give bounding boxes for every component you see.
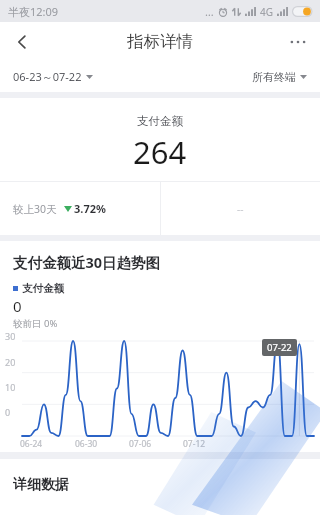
staticText: 10 xyxy=(5,381,16,393)
button[interactable]: 所有终端 xyxy=(250,66,309,88)
staticText: 详细数据 xyxy=(13,476,69,494)
button[interactable]: 较上30天 xyxy=(0,182,160,235)
staticText: 指标详情 xyxy=(127,31,193,52)
button[interactable]: Back xyxy=(0,22,44,61)
staticText: 264 xyxy=(133,131,187,173)
staticText: … xyxy=(205,4,214,19)
staticText: 06-30 xyxy=(75,438,98,450)
staticText: 07-22 xyxy=(267,341,292,354)
staticText: 0 xyxy=(5,406,11,418)
button[interactable]: More options xyxy=(276,22,320,61)
staticText: 支付金额近30日趋势图 xyxy=(13,252,161,272)
staticText: 06-23～07-22 xyxy=(13,69,82,84)
staticText: 所有终端 xyxy=(252,70,296,84)
staticText: 07-06 xyxy=(129,438,152,450)
staticText: 20 xyxy=(5,356,16,368)
staticText: 0 xyxy=(13,296,22,316)
button[interactable]: 06-23～07-22 xyxy=(11,65,95,88)
staticText: 较前日 0% xyxy=(13,317,58,330)
staticText: 3.72% xyxy=(74,201,106,216)
staticText: -- xyxy=(237,202,244,216)
staticText: 支付金额 xyxy=(137,114,183,128)
staticText: 半夜12:09 xyxy=(8,4,59,19)
staticText: 支付金额 xyxy=(22,282,64,295)
staticText: 4G xyxy=(260,5,273,19)
staticText: 07-12 xyxy=(183,438,206,450)
staticText: 06-24 xyxy=(20,438,43,450)
staticText: 30 xyxy=(5,330,16,342)
staticText: 较上30天 xyxy=(13,202,57,216)
